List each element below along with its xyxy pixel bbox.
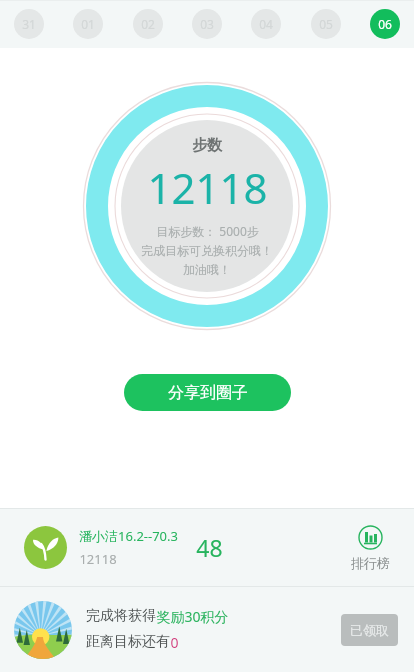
staticText: 加油哦！: [183, 262, 231, 277]
staticText: 分享到圈子: [168, 383, 248, 403]
button[interactable]: 完成将获得: [0, 587, 414, 672]
staticText: 01: [81, 16, 95, 32]
button[interactable]: 已领取: [341, 614, 398, 646]
button[interactable]: 排行榜: [343, 521, 398, 575]
staticText: 12118: [79, 550, 117, 568]
button[interactable]: 06: [370, 9, 400, 39]
staticText: 完成将获得: [86, 607, 156, 625]
staticText: 距离目标还有: [86, 633, 170, 651]
staticText: 0: [170, 633, 179, 652]
staticText: 06: [378, 16, 392, 32]
button[interactable]: 01: [73, 9, 103, 39]
button[interactable]: 潘小洁16.2--70.3: [0, 509, 414, 586]
button[interactable]: 05: [311, 9, 341, 39]
button[interactable]: 04: [251, 9, 281, 39]
button[interactable]: 分享到圈子: [124, 374, 291, 411]
button[interactable]: 31: [14, 9, 44, 39]
staticText: 12118: [147, 159, 268, 216]
staticText: 48: [196, 532, 223, 563]
staticText: 完成目标可兑换积分哦！: [141, 243, 273, 258]
staticText: 02: [141, 16, 155, 32]
button[interactable]: 02: [133, 9, 163, 39]
staticText: 04: [259, 16, 273, 32]
staticText: 已领取: [350, 622, 389, 638]
staticText: 步数: [192, 136, 222, 155]
staticText: 潘小洁16.2--70.3: [79, 527, 178, 545]
staticText: 奖励30积分: [156, 607, 229, 626]
button[interactable]: 03: [192, 9, 222, 39]
staticText: 31: [22, 16, 36, 32]
staticText: 05: [319, 16, 333, 32]
staticText: 排行榜: [351, 555, 390, 571]
staticText: 03: [200, 16, 214, 32]
staticText: 目标步数： 5000步: [156, 223, 259, 239]
